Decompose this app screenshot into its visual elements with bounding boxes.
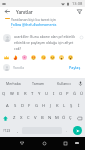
button[interactable]: ?123	[0, 124, 14, 137]
staticText: Ö	[62, 115, 66, 121]
button[interactable]: Z	[11, 112, 18, 124]
staticText: G	[35, 103, 39, 109]
button[interactable]: Reaction	[67, 54, 74, 61]
staticText: İ	[78, 103, 80, 109]
button[interactable]: Q	[0, 88, 8, 100]
button[interactable]: Filter	[73, 7, 85, 16]
button[interactable]: V	[32, 112, 39, 124]
button[interactable]: L	[61, 100, 68, 112]
button[interactable]: Paylaş	[68, 63, 82, 72]
staticText: etkinlik ve paylaşım olduğu için afiyet	[14, 40, 74, 45]
staticText: P	[66, 91, 69, 97]
staticText: R	[24, 91, 27, 97]
staticText: N	[48, 115, 52, 121]
staticText: cok?	[14, 46, 21, 51]
staticText: Yanıtlar	[16, 9, 33, 15]
button[interactable]: Reaction	[58, 54, 65, 61]
staticText: Z	[13, 115, 16, 121]
staticText: A	[6, 103, 9, 109]
button[interactable]: Merhaba	[0, 78, 26, 88]
staticText: C	[27, 115, 30, 121]
button[interactable]: Y	[36, 88, 43, 100]
button[interactable]: P	[64, 88, 71, 100]
staticText: 1sn	[11, 27, 17, 29]
button[interactable]: O	[57, 88, 64, 100]
button[interactable]: E	[15, 88, 22, 100]
button[interactable]: M	[53, 112, 60, 124]
staticText: B	[41, 115, 44, 121]
button[interactable]: Reaction	[49, 54, 56, 61]
button[interactable]: Voice input	[76, 78, 85, 88]
button[interactable]: Backspace	[74, 112, 85, 124]
button[interactable]: Recent apps	[59, 137, 71, 149]
staticText: Q	[2, 91, 6, 97]
button[interactable]: C	[25, 112, 32, 124]
button[interactable]: N	[46, 112, 53, 124]
staticText: V	[34, 115, 37, 121]
staticText: X	[20, 115, 23, 121]
staticText: ?123	[3, 128, 11, 133]
button[interactable]: R	[22, 88, 29, 100]
button[interactable]: Ö	[60, 112, 67, 124]
staticText: acarkiller: Bunu abone olan pıf etkinlik	[14, 34, 75, 39]
button[interactable]: Back	[0, 7, 14, 16]
staticText: Tamam	[32, 81, 45, 86]
staticText: I	[53, 91, 55, 97]
button[interactable]: I	[50, 88, 57, 100]
staticText: Ü	[80, 91, 84, 97]
button[interactable]: Ş	[68, 100, 75, 112]
staticText: Merhaba	[6, 81, 21, 86]
staticText: M	[55, 115, 59, 121]
button[interactable]: Hide keyboard	[16, 137, 28, 149]
staticText: F	[28, 103, 31, 109]
staticText: Yanıtlanan kişi: bu tweet için	[11, 17, 56, 22]
staticText: Paylaş	[69, 65, 81, 70]
button[interactable]: G	[33, 100, 40, 112]
staticText: E	[17, 91, 20, 97]
button[interactable]: F	[26, 100, 33, 112]
staticText: J	[50, 103, 52, 109]
staticText: Kullanıcı	[57, 81, 71, 86]
button[interactable]: T	[29, 88, 36, 100]
staticText: U	[45, 91, 49, 97]
staticText: Yanıtla	[13, 65, 25, 70]
button[interactable]: Ü	[78, 88, 85, 100]
button[interactable]: K	[54, 100, 61, 112]
button[interactable]: More options	[78, 34, 85, 41]
button[interactable]: Shift	[0, 112, 11, 124]
button[interactable]: Send	[70, 124, 85, 137]
staticText: W	[10, 91, 14, 97]
staticText: ,	[17, 128, 19, 133]
staticText: .	[66, 128, 68, 133]
staticText: D	[21, 103, 25, 109]
button[interactable]: Reaction	[3, 54, 10, 61]
button[interactable]: Home	[38, 137, 50, 149]
button[interactable]: Reaction	[30, 54, 37, 61]
button[interactable]: U	[43, 88, 50, 100]
button[interactable]: D	[19, 100, 26, 112]
button[interactable]: B	[39, 112, 46, 124]
button[interactable]: Ç	[67, 112, 74, 124]
button[interactable]: Tamam	[26, 78, 51, 88]
button[interactable]: Change keyboard	[71, 137, 83, 149]
button[interactable]: Kullanıcı	[51, 78, 76, 88]
button[interactable]: H	[40, 100, 47, 112]
button[interactable]: J	[47, 100, 54, 112]
staticText: Follow @thefullsohmoments	[11, 22, 57, 27]
button[interactable]: S	[11, 100, 19, 112]
staticText: 13:08	[72, 1, 83, 6]
button[interactable]: Reaction	[40, 54, 47, 61]
button[interactable]: X	[18, 112, 25, 124]
button[interactable]: W	[8, 88, 15, 100]
button[interactable]: ,	[14, 124, 21, 137]
button[interactable]: İ	[75, 100, 82, 112]
button[interactable]: Reaction	[12, 54, 19, 61]
button[interactable]: A	[3, 100, 11, 112]
staticText: K	[56, 103, 59, 109]
staticText: T	[31, 91, 34, 97]
button[interactable]: Reaction	[21, 54, 28, 61]
staticText: O	[59, 91, 63, 97]
button[interactable]: Ğ	[71, 88, 78, 100]
